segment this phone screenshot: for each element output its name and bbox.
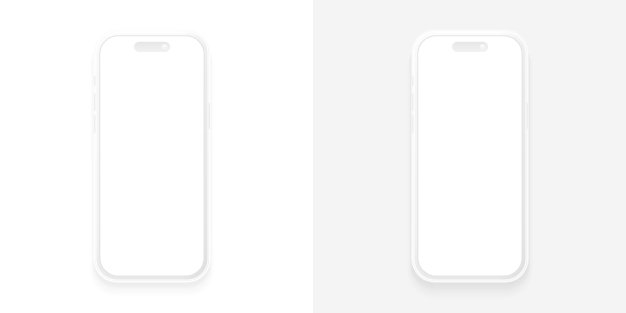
button[interactable]: Blank smartphone mockup, light theme: [0, 0, 626, 313]
